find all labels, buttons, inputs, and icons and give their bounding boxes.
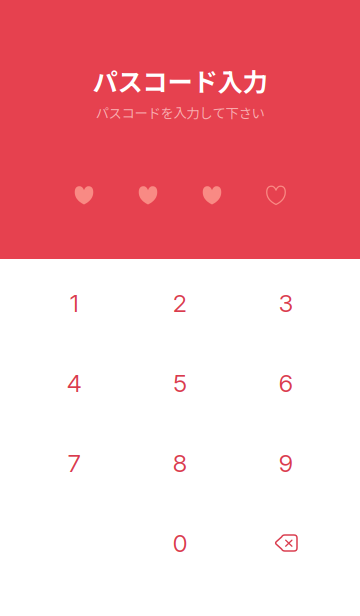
- staticText: 3: [278, 288, 293, 318]
- staticText: パスコード入力: [92, 62, 267, 99]
- staticText: 2: [172, 288, 187, 318]
- button[interactable]: 6: [233, 343, 339, 423]
- staticText: 8: [172, 448, 187, 478]
- staticText: 6: [278, 368, 293, 398]
- button[interactable]: 3: [233, 263, 339, 343]
- button[interactable]: 9: [233, 423, 339, 503]
- button[interactable]: 7: [21, 423, 127, 503]
- staticText: 9: [278, 448, 293, 478]
- button[interactable]: 8: [127, 423, 233, 503]
- staticText: 0: [172, 528, 187, 558]
- button[interactable]: 2: [127, 263, 233, 343]
- staticText: 1: [69, 288, 78, 318]
- button[interactable]: 5: [127, 343, 233, 423]
- button[interactable]: Delete: [233, 503, 339, 583]
- button[interactable]: 1: [21, 263, 127, 343]
- button[interactable]: 4: [21, 343, 127, 423]
- staticText: 7: [67, 448, 80, 478]
- staticText: 4: [66, 368, 81, 398]
- staticText: 5: [173, 368, 187, 398]
- staticText: パスコードを入力して下さい: [95, 103, 264, 122]
- button[interactable]: 0: [127, 503, 233, 583]
